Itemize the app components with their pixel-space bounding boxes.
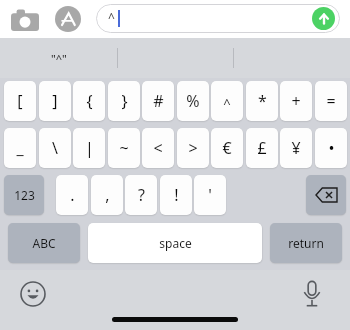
button[interactable]: Dictate xyxy=(300,279,324,309)
staticText: # xyxy=(153,90,164,112)
button[interactable]: ] xyxy=(39,81,71,121)
staticText: ^ xyxy=(108,9,115,25)
staticText: \ xyxy=(52,137,58,159)
staticText: ^ xyxy=(223,94,231,112)
button[interactable]: ' xyxy=(194,175,226,215)
staticText: % xyxy=(186,90,200,112)
button[interactable]: space xyxy=(88,223,262,263)
staticText: } xyxy=(121,90,128,112)
staticText: + xyxy=(291,90,301,112)
button[interactable]: • xyxy=(315,128,347,168)
staticText: € xyxy=(222,137,232,159)
button[interactable]: _ xyxy=(4,128,36,168)
staticText: ¥ xyxy=(291,137,301,159)
button[interactable]: [ xyxy=(4,81,36,121)
staticText: "^" xyxy=(51,51,67,66)
button[interactable]: % xyxy=(177,81,209,121)
button[interactable]: € xyxy=(211,128,243,168)
button[interactable]: > xyxy=(177,128,209,168)
staticText: • xyxy=(328,137,335,159)
button[interactable]: . xyxy=(56,175,88,215)
button[interactable]: = xyxy=(315,81,347,121)
button[interactable]: < xyxy=(142,128,174,168)
button[interactable]: return xyxy=(270,223,342,263)
staticText: space xyxy=(159,235,192,251)
staticText: { xyxy=(86,90,93,112)
staticText: _ xyxy=(16,137,24,159)
button[interactable]: App Store xyxy=(55,6,81,32)
staticText: ' xyxy=(208,184,212,206)
button[interactable]: £ xyxy=(246,128,278,168)
button[interactable]: 123 xyxy=(4,175,44,215)
button[interactable]: ! xyxy=(160,175,192,215)
staticText: | xyxy=(85,137,94,159)
button[interactable]: ? xyxy=(125,175,157,215)
staticText: £ xyxy=(257,137,267,159)
button[interactable]: ~ xyxy=(108,128,140,168)
staticText: > xyxy=(188,137,198,159)
button[interactable]: , xyxy=(91,175,123,215)
button[interactable]: + xyxy=(280,81,312,121)
button[interactable]: | xyxy=(73,128,105,168)
button[interactable]: Emoji xyxy=(20,281,46,307)
button[interactable]: ^ xyxy=(211,81,243,121)
staticText: , xyxy=(105,184,110,206)
staticText: * xyxy=(258,90,267,112)
staticText: . xyxy=(70,184,75,206)
button[interactable]: Send xyxy=(312,7,335,30)
button[interactable]: Camera xyxy=(11,7,39,31)
staticText: 123 xyxy=(14,187,35,203)
button[interactable]: Backspace xyxy=(306,175,346,215)
button[interactable]: \ xyxy=(39,128,71,168)
button[interactable]: ¥ xyxy=(280,128,312,168)
button[interactable]: ABC xyxy=(8,223,80,263)
staticText: ? xyxy=(138,184,145,206)
button[interactable]: { xyxy=(73,81,105,121)
staticText: [ xyxy=(17,90,23,112)
staticText: = xyxy=(326,90,336,112)
staticText: < xyxy=(153,137,163,159)
staticText: ! xyxy=(174,184,179,206)
button[interactable]: } xyxy=(108,81,140,121)
button[interactable]: "^" xyxy=(0,38,117,78)
button[interactable]: * xyxy=(246,81,278,121)
staticText: ~ xyxy=(119,137,129,159)
button[interactable]: # xyxy=(142,81,174,121)
staticText: ] xyxy=(52,90,58,112)
button[interactable]: ^ xyxy=(96,4,340,33)
staticText: ABC xyxy=(32,235,56,251)
staticText: return xyxy=(288,235,324,251)
